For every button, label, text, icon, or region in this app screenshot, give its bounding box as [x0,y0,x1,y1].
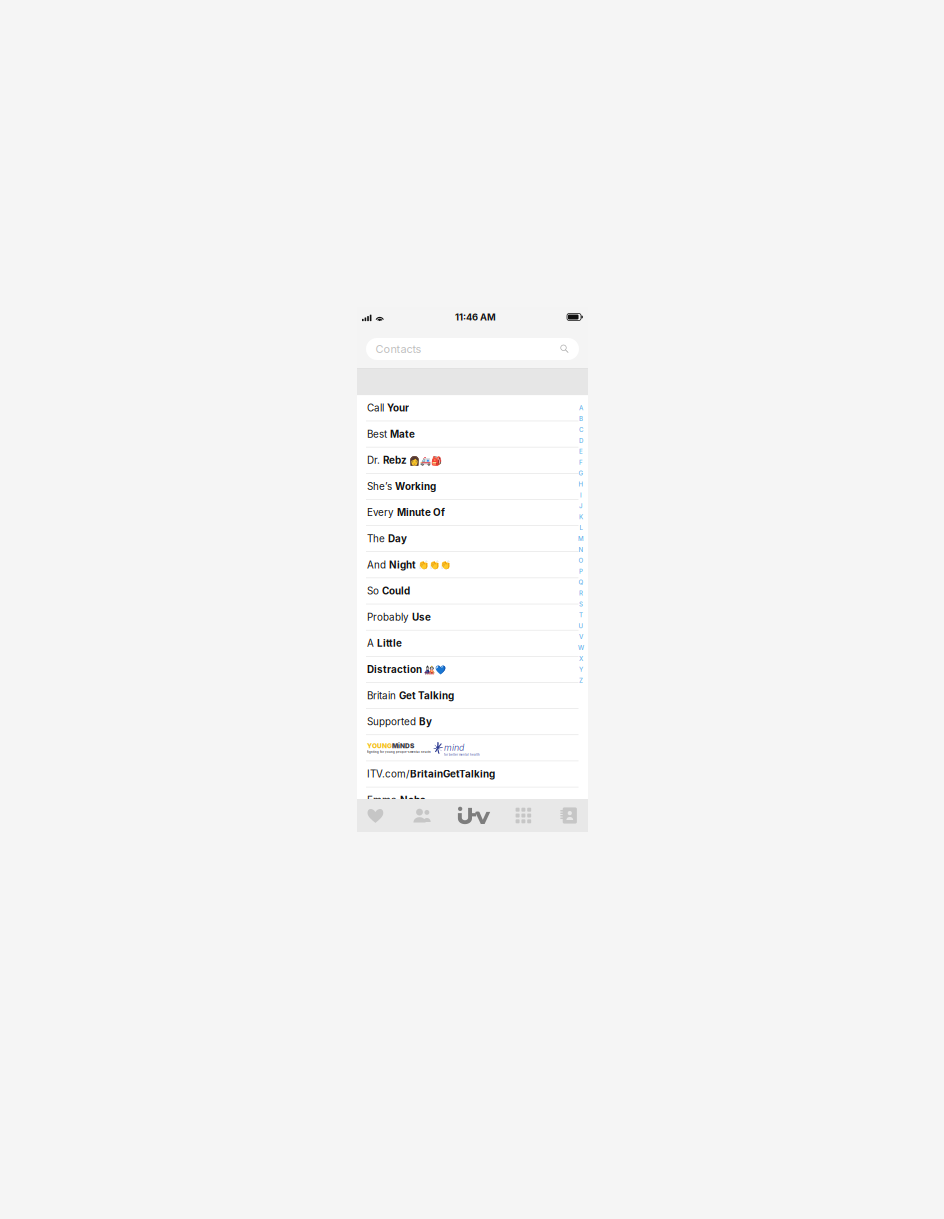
staticText: P [579,568,583,575]
staticText: mind [444,742,464,753]
button[interactable]: Every Minute Of [357,500,588,526]
staticText: F [579,459,583,466]
button[interactable]: I [576,490,586,501]
button[interactable]: M [576,533,586,544]
button[interactable]: O [576,555,586,566]
staticText: for better mental health [444,753,480,756]
button[interactable]: Keypad [503,799,543,832]
button[interactable]: B [576,413,586,424]
staticText: Dr. Rebz 👩🚑🎒 [367,454,442,466]
staticText: R [579,589,583,597]
button[interactable]: Best Mate [357,421,588,447]
staticText: Q [578,579,583,586]
staticText: T [579,611,583,619]
staticText: Best Mate [367,428,415,440]
button[interactable]: K [576,511,586,522]
button[interactable]: J [576,501,586,511]
staticText: Every Minute Of [367,507,445,518]
button[interactable]: U [576,620,586,631]
staticText: Probably Use [367,611,431,623]
button[interactable]: R [576,588,586,599]
button[interactable]: And Night 👏👏👏 [357,552,588,578]
button[interactable]: A Little [357,630,588,657]
button[interactable]: Call Your [357,395,588,421]
staticText: G [578,470,583,477]
button[interactable]: L [576,522,586,533]
button[interactable]: A [576,402,586,413]
staticText: YOUNG [367,742,392,750]
staticText: A Little [367,637,402,649]
button[interactable]: G [576,468,586,479]
staticText: M [578,535,584,542]
staticText: S [579,600,583,608]
button[interactable]: S [576,599,586,610]
button[interactable]: Q [576,577,586,588]
staticText: D [579,437,583,444]
staticText: A [579,404,583,412]
staticText: H [578,480,583,488]
staticText: fighting for young people’s mental healt… [367,750,431,754]
button[interactable]: My card [549,799,589,832]
button[interactable]: C [576,424,586,435]
staticText: J [579,502,583,510]
button[interactable]: Contacts [402,799,442,832]
staticText: Contacts [375,342,421,356]
staticText: Z [579,677,583,684]
staticText: She’s Working [367,480,436,492]
staticText: C [579,426,583,433]
button[interactable]: P [576,566,586,577]
button[interactable]: F [576,457,586,468]
staticText: W [578,644,584,651]
button[interactable]: H [576,479,586,490]
staticText: E [579,448,583,455]
button[interactable]: Distraction 🎎💙 [357,657,588,683]
button[interactable]: N [576,544,586,555]
staticText: K [579,513,583,521]
button[interactable]: Probably Use [357,604,588,630]
button[interactable]: The Day [357,526,588,552]
button[interactable]: Z [576,675,586,686]
button[interactable]: Y [576,664,586,675]
button[interactable]: Contacts [366,338,579,360]
staticText: The Day [367,533,407,544]
staticText: Emma Nobs [367,794,426,806]
button[interactable]: So Could [357,578,588,604]
staticText: I [580,491,582,499]
button[interactable]: W [576,642,586,653]
staticText: So Could [367,585,410,597]
staticText: L [579,524,582,531]
button[interactable]: Supported By [357,709,588,735]
button[interactable]: X [576,653,586,664]
button[interactable]: Dr. Rebz 👩🚑🎒 [357,447,588,473]
staticText: V [579,633,583,640]
button[interactable]: Emma Nobs [357,787,588,813]
button[interactable]: ITV.com/BritainGetTalking [357,761,588,787]
staticText: And Night 👏👏👏 [367,559,451,571]
staticText: Distraction 🎎💙 [367,664,446,675]
staticText: U [578,622,583,630]
staticText: Britain Get Talking [367,690,454,701]
staticText: N [578,546,583,553]
button[interactable]: E [576,446,586,457]
staticText: X [579,655,583,662]
staticText: Supported By [367,716,432,727]
button[interactable]: T [576,610,586,620]
button[interactable]: D [576,435,586,446]
button[interactable]: She’s Working [357,474,588,500]
staticText: Call Your [367,402,409,414]
button[interactable]: Britain Get Talking [357,683,588,709]
staticText: B [579,415,583,422]
button[interactable]: YoungMinds and Mind [357,735,588,761]
button[interactable]: Favourites [355,799,395,832]
button[interactable]: V [576,631,586,642]
staticText: Y [579,666,583,673]
staticText: 11:46 AM [455,311,496,323]
staticText: ITV.com/BritainGetTalking [367,768,495,780]
button[interactable]: ITV [452,799,496,832]
staticText: MiNDS [392,742,414,750]
staticText: O [578,557,583,564]
